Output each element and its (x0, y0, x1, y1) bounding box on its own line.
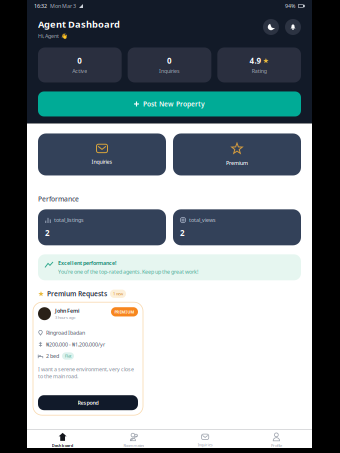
staticText: Performance (38, 194, 79, 203)
button[interactable]: Inquiries (38, 133, 166, 175)
staticText: Inquiries (91, 158, 112, 165)
staticText: Post New Property (143, 99, 205, 108)
staticText: total_views (189, 216, 216, 224)
staticText: 3 hours ago (55, 315, 75, 320)
button[interactable]: Roommates (98, 433, 169, 448)
staticText: John Femi (55, 307, 80, 314)
staticText: Active (72, 67, 87, 75)
button[interactable]: Inquiries (169, 433, 241, 448)
staticText: 1 new (113, 291, 123, 296)
staticText: I want a serene environment, very close … (38, 366, 134, 380)
button[interactable]: Profile (241, 433, 312, 448)
button[interactable]: Notifications (285, 19, 301, 35)
staticText: Roommates (123, 443, 144, 448)
staticText: Inquiries (159, 67, 180, 75)
button[interactable]: Dashboard (27, 433, 98, 448)
staticText: 94% (285, 2, 295, 10)
staticText: Flat (65, 353, 71, 359)
staticText: Excellent performance! (58, 259, 116, 267)
staticText: 2 (45, 228, 50, 238)
staticText: total_listings (54, 216, 84, 224)
button[interactable]: Post New Property (38, 91, 301, 116)
staticText: 2 (180, 228, 185, 238)
staticText: Hi, Agent (38, 32, 59, 39)
staticText: You're one of the top-rated agents. Keep… (58, 268, 198, 275)
button[interactable]: Premium (173, 133, 301, 175)
staticText: 2 bed (46, 352, 59, 360)
staticText: 👋 (61, 33, 68, 39)
staticText: ₦200,000 - ₦1,200,000/yr (46, 341, 105, 348)
staticText: Premium Requests (47, 289, 107, 298)
staticText: Dashboard (52, 443, 74, 448)
button[interactable]: Toggle dark mode (263, 19, 279, 35)
staticText: 0 (167, 55, 172, 66)
staticText: Rating (252, 67, 267, 75)
staticText: Profile (271, 443, 282, 448)
staticText: Respond (77, 399, 98, 406)
staticText: Ringroad Ibadan (46, 329, 85, 336)
button[interactable]: Respond (38, 395, 138, 410)
staticText: Mon Mar 3 (50, 2, 76, 10)
staticText: Agent Dashboard (38, 18, 120, 30)
staticText: 0 (77, 55, 82, 66)
staticText: 4.9 (249, 55, 261, 66)
staticText: Inquiries (198, 442, 213, 447)
staticText: PREMIUM (114, 309, 134, 314)
staticText: Premium (226, 159, 248, 166)
staticText: 16:32 (34, 2, 47, 10)
